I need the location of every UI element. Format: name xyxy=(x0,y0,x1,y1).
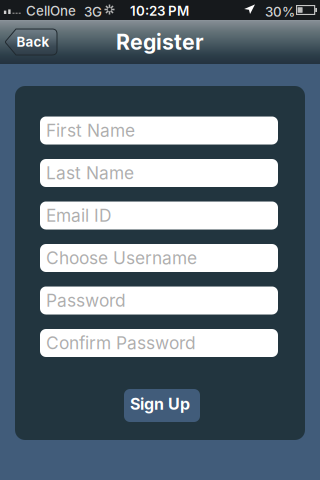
button[interactable]: Back xyxy=(5,29,57,55)
staticText: 3G xyxy=(84,4,102,20)
button[interactable]: Sign Up xyxy=(124,389,200,422)
staticText: CellOne xyxy=(26,3,76,19)
staticText: Register xyxy=(116,29,204,55)
staticText: Password xyxy=(46,290,126,311)
staticText: Choose Username xyxy=(46,248,197,268)
staticText: Sign Up xyxy=(130,395,190,413)
staticText: Back xyxy=(16,34,49,50)
staticText: Confirm Password xyxy=(46,333,196,353)
staticText: Email ID xyxy=(46,205,112,226)
staticText: First Name xyxy=(46,120,135,141)
staticText: Last Name xyxy=(46,163,134,183)
staticText: 30% xyxy=(265,4,295,20)
staticText: 10:23 PM xyxy=(130,3,189,19)
